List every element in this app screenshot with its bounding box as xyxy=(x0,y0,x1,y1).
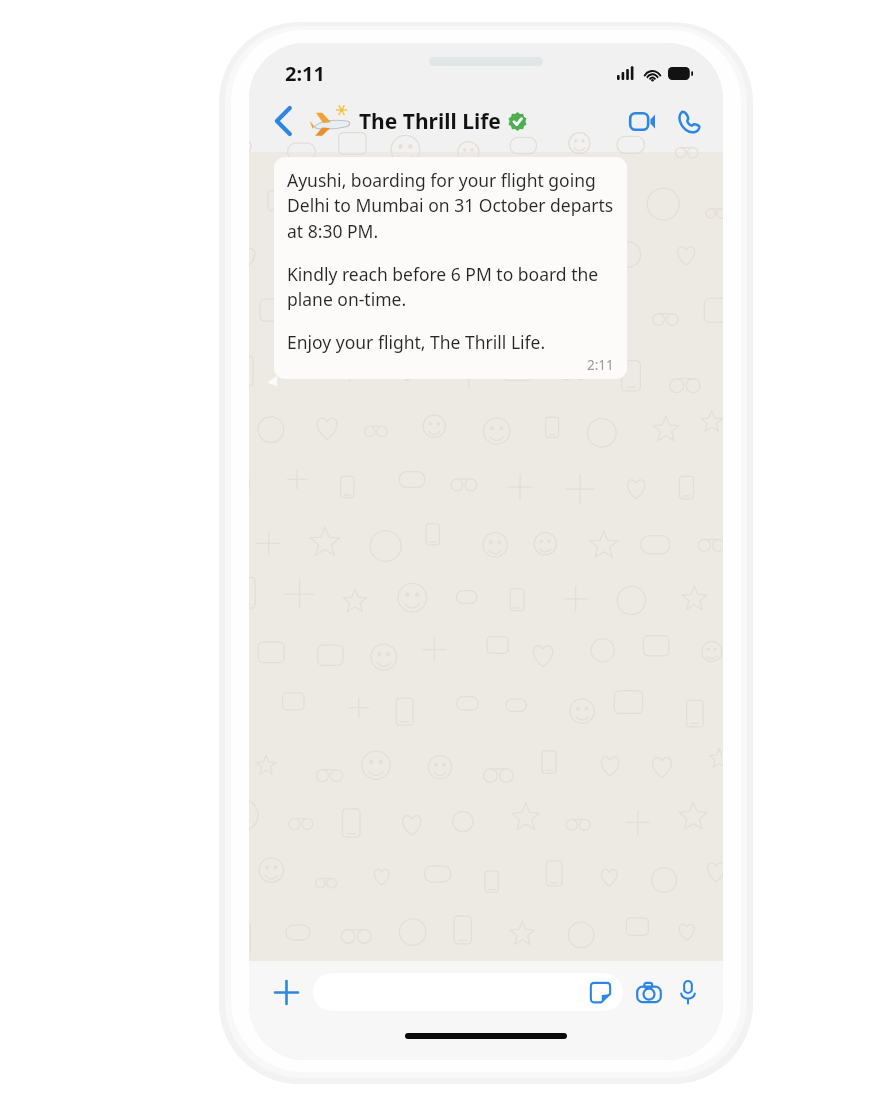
staticText: 2:11 xyxy=(285,60,325,87)
button[interactable]: Video call xyxy=(619,98,665,144)
button[interactable]: Camera xyxy=(629,972,669,1012)
button[interactable]: Attach xyxy=(267,973,305,1011)
staticText: 2:11 xyxy=(587,356,614,374)
button[interactable]: The Thrill Life xyxy=(309,105,619,137)
button[interactable]: Voice message xyxy=(669,973,707,1011)
button[interactable]: Stickers xyxy=(313,973,623,1011)
button[interactable]: Ayushi, boarding for your flight going D… xyxy=(274,157,627,379)
staticText: Enjoy your flight, The Thrill Life. xyxy=(287,330,546,354)
button[interactable]: Back xyxy=(263,101,303,141)
button[interactable]: Voice call xyxy=(665,98,711,144)
staticText: Kindly reach before 6 PM to board the pl… xyxy=(287,262,614,312)
button[interactable]: Stickers xyxy=(588,980,612,1004)
staticText: The Thrill Life xyxy=(359,107,501,136)
staticText: Ayushi, boarding for your flight going D… xyxy=(287,168,614,244)
